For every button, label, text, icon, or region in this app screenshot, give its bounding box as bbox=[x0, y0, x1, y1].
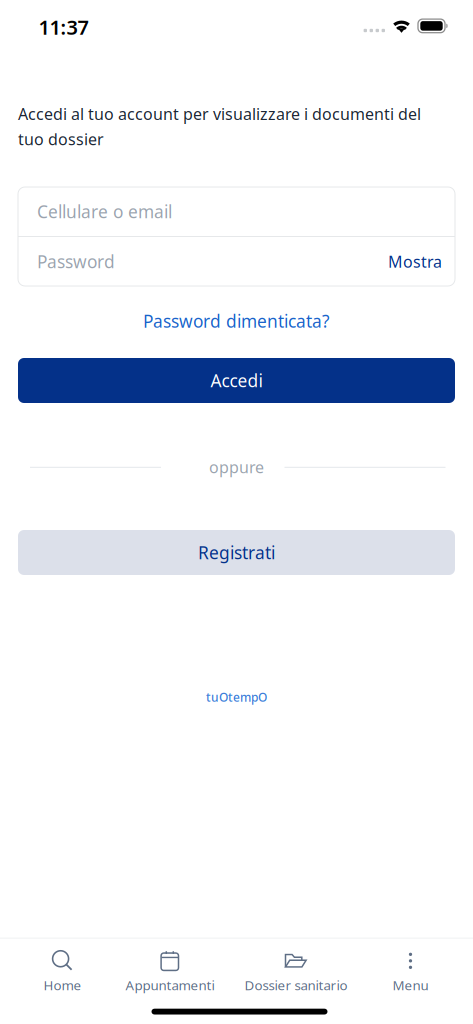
staticText: Menu bbox=[392, 976, 428, 994]
button[interactable]: tuOtempO bbox=[196, 681, 277, 713]
button[interactable]: Password dimenticata? bbox=[127, 300, 346, 341]
staticText: oppure bbox=[209, 456, 264, 478]
staticText: Accedi al tuo account per visualizzare i… bbox=[18, 103, 421, 124]
staticText: Registrati bbox=[198, 541, 275, 564]
button[interactable]: Mostra bbox=[374, 238, 455, 285]
staticText: 11:37 bbox=[38, 14, 88, 40]
staticText: tuOtempO bbox=[206, 689, 267, 705]
staticText: Appuntamenti bbox=[125, 976, 214, 994]
button[interactable]: Home bbox=[35, 938, 89, 1004]
staticText: Password bbox=[37, 250, 115, 273]
staticText: tuo dossier bbox=[18, 128, 104, 150]
button[interactable]: Appuntamenti bbox=[117, 938, 222, 1004]
staticText: Home bbox=[43, 976, 81, 994]
staticText: Password dimenticata? bbox=[143, 309, 330, 332]
button[interactable]: Accedi bbox=[18, 358, 455, 403]
button[interactable]: Dossier sanitario bbox=[236, 938, 355, 1004]
button[interactable]: Password bbox=[18, 237, 374, 286]
button[interactable]: Cellulare o email bbox=[18, 187, 455, 236]
button[interactable]: Menu bbox=[384, 938, 436, 1004]
staticText: Accedi bbox=[210, 369, 262, 392]
staticText: Mostra bbox=[388, 251, 442, 272]
staticText: Dossier sanitario bbox=[244, 976, 347, 994]
button[interactable]: Registrati bbox=[18, 530, 455, 575]
staticText: Cellulare o email bbox=[37, 200, 172, 223]
